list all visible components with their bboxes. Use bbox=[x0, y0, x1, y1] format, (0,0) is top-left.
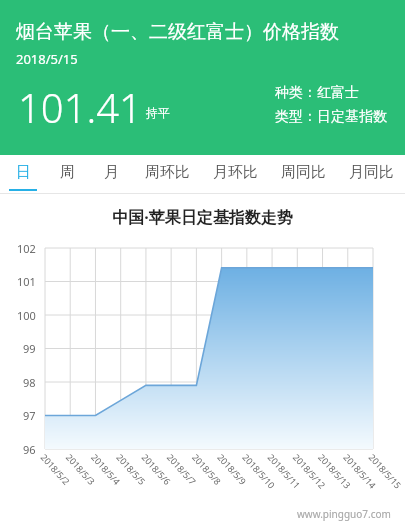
staticText: 日 bbox=[16, 163, 31, 182]
staticText: 持平 bbox=[146, 105, 170, 120]
button[interactable]: 月同比 bbox=[337, 155, 405, 193]
staticText: 烟台苹果（一、二级红富士）价格指数 bbox=[16, 20, 339, 44]
staticText: 2018/5/15 bbox=[16, 50, 78, 68]
button[interactable]: 周 bbox=[45, 155, 89, 193]
button[interactable]: 周环比 bbox=[133, 155, 201, 193]
staticText: 种类：红富士 bbox=[275, 84, 359, 102]
staticText: 月 bbox=[104, 163, 119, 182]
staticText: 周 bbox=[60, 163, 75, 182]
staticText: 周同比 bbox=[281, 163, 326, 182]
staticText: 月环比 bbox=[213, 163, 258, 182]
button[interactable]: 月环比 bbox=[201, 155, 269, 193]
staticText: 101.41 bbox=[18, 80, 142, 134]
button[interactable]: 日 bbox=[0, 155, 45, 193]
staticText: 月同比 bbox=[349, 163, 394, 182]
button[interactable]: 周同比 bbox=[269, 155, 337, 193]
staticText: 中国·苹果日定基指数走势 bbox=[112, 206, 293, 228]
staticText: 类型：日定基指数 bbox=[275, 108, 387, 126]
staticText: 周环比 bbox=[145, 163, 190, 182]
button[interactable]: 月 bbox=[89, 155, 133, 193]
